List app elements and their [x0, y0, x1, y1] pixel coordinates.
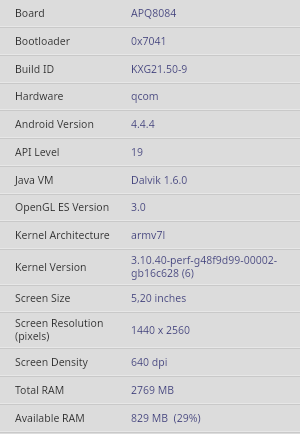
- staticText: armv7l: [131, 229, 166, 242]
- staticText: APQ8084: [131, 7, 177, 20]
- button[interactable]: Screen Size: [0, 286, 300, 311]
- staticText: Total RAM: [15, 384, 65, 397]
- staticText: 3.0: [131, 201, 146, 214]
- staticText: 2769 MB: [131, 384, 175, 397]
- button[interactable]: Total RAM: [0, 377, 300, 403]
- button[interactable]: Kernel Version: [0, 250, 300, 284]
- staticText: Hardware: [15, 90, 64, 103]
- staticText: 5,20 inches: [131, 292, 187, 305]
- button[interactable]: Kernel Architecture: [0, 222, 300, 248]
- button[interactable]: OpenGL ES Version: [0, 195, 300, 220]
- staticText: Available RAM: [15, 412, 85, 425]
- staticText: Android Version: [15, 118, 94, 131]
- button[interactable]: Android Version: [0, 111, 300, 137]
- staticText: Kernel Version: [15, 261, 87, 274]
- button[interactable]: Hardware: [0, 84, 300, 109]
- staticText: OpenGL ES Version: [15, 201, 110, 214]
- staticText: Screen Density: [15, 356, 88, 369]
- button[interactable]: Available RAM: [0, 405, 300, 431]
- button[interactable]: Bootloader: [0, 28, 300, 54]
- staticText: 0x7041: [131, 35, 167, 48]
- button[interactable]: Screen Resolution (pixels): [0, 313, 300, 347]
- staticText: 1440 x 2560: [131, 324, 191, 337]
- staticText: 640 dpi: [131, 356, 168, 369]
- staticText: 3.10.40-perf-g48f9d99-00002-gb16c628 (6): [131, 254, 296, 280]
- staticText: Board: [15, 7, 45, 20]
- staticText: qcom: [131, 90, 159, 103]
- staticText: Kernel Architecture: [15, 229, 110, 242]
- staticText: Java VM: [15, 174, 54, 187]
- staticText: Bootloader: [15, 35, 70, 48]
- button[interactable]: API Level: [0, 139, 300, 165]
- staticText: 829 MB (29%): [131, 412, 201, 425]
- staticText: 19: [131, 146, 144, 159]
- staticText: 4.4.4: [131, 118, 155, 131]
- staticText: Screen Resolution (pixels): [15, 317, 127, 343]
- staticText: Screen Size: [15, 292, 71, 305]
- button[interactable]: Build ID: [0, 56, 300, 82]
- button[interactable]: Board: [0, 0, 300, 26]
- staticText: KXG21.50-9: [131, 63, 188, 76]
- staticText: Dalvik 1.6.0: [131, 174, 188, 187]
- button[interactable]: Screen Density: [0, 349, 300, 375]
- button[interactable]: Java VM: [0, 167, 300, 193]
- staticText: Build ID: [15, 63, 55, 76]
- staticText: API Level: [15, 146, 60, 159]
